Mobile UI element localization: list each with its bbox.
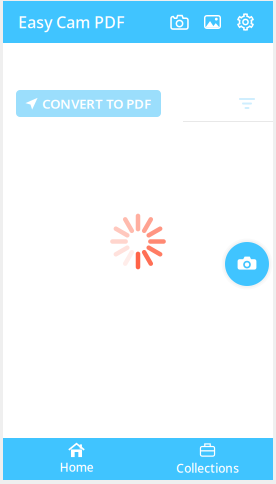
staticText: Home: [59, 459, 93, 475]
button[interactable]: Home: [11, 438, 142, 480]
button[interactable]: Settings: [229, 5, 262, 39]
button[interactable]: Camera: [163, 5, 196, 39]
button[interactable]: Take photo: [221, 238, 273, 290]
button[interactable]: Filter: [225, 90, 269, 117]
button[interactable]: CONVERT TO PDF: [16, 90, 161, 117]
staticText: CONVERT TO PDF: [42, 95, 151, 112]
staticText: Collections: [176, 460, 239, 476]
button[interactable]: Collections: [142, 438, 273, 480]
staticText: Easy Cam PDF: [18, 11, 124, 33]
button[interactable]: Photos: [196, 5, 229, 39]
